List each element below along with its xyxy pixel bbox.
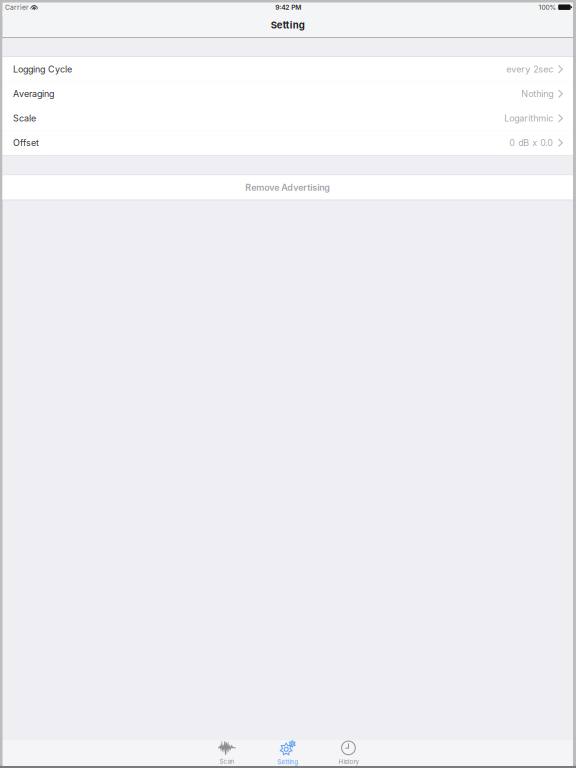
staticText: Setting bbox=[277, 758, 298, 766]
staticText: History bbox=[338, 758, 358, 765]
button[interactable]: Scale bbox=[2, 106, 573, 130]
staticText: Remove Advertising bbox=[245, 182, 330, 193]
button[interactable]: Remove Advertising bbox=[2, 175, 573, 200]
button[interactable]: Offset bbox=[2, 130, 573, 155]
staticText: Carrier bbox=[5, 3, 29, 11]
staticText: Nothing bbox=[521, 88, 553, 99]
staticText: Scale bbox=[13, 113, 36, 124]
button[interactable]: Logging Cycle bbox=[2, 57, 573, 81]
staticText: 0 dB x 0.0 bbox=[509, 137, 553, 148]
staticText: every 2sec bbox=[506, 64, 553, 75]
staticText: Logarithmic bbox=[504, 113, 553, 124]
button[interactable]: History bbox=[318, 740, 379, 767]
button[interactable]: Setting bbox=[257, 740, 318, 767]
staticText: Logging Cycle bbox=[13, 64, 72, 75]
staticText: Setting bbox=[271, 19, 305, 31]
staticText: Averaging bbox=[13, 88, 54, 99]
button[interactable]: Scan bbox=[196, 740, 257, 767]
staticText: Scan bbox=[219, 758, 234, 765]
staticText: Offset bbox=[13, 137, 39, 148]
staticText: 9:42 PM bbox=[275, 3, 301, 11]
staticText: 100% bbox=[539, 3, 557, 11]
button[interactable]: Averaging bbox=[2, 81, 573, 106]
